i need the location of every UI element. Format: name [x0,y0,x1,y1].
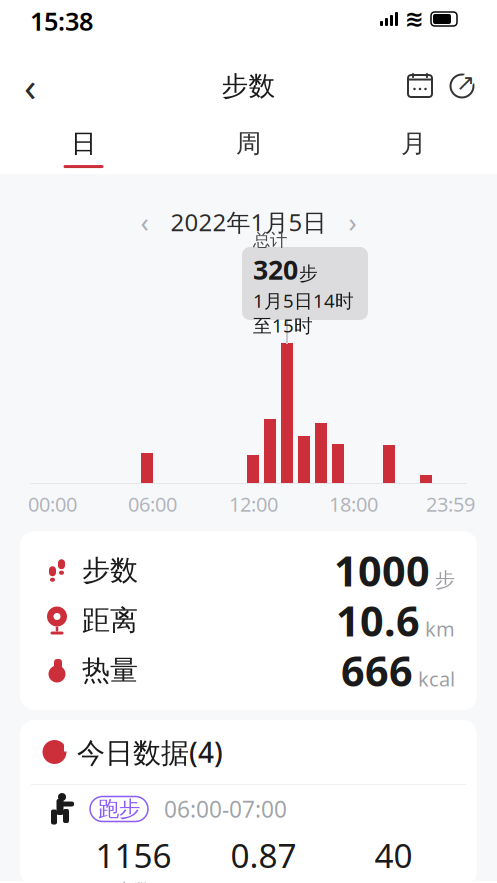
button[interactable]: 返回 [8,64,52,108]
button[interactable]: 后一天 [340,207,364,237]
staticText: ↗ [456,70,475,95]
button[interactable]: 分享 [440,64,484,108]
staticText: 10.6 [336,593,420,648]
staticText: ‹ [140,204,148,240]
staticText: 06:00-07:00 [164,794,287,824]
staticText: › [348,204,356,240]
button[interactable]: 周 [166,120,331,176]
staticText: 1156 [95,833,171,877]
staticText: 0.87 [230,833,296,877]
staticText: 1月5日14时至15时 [253,288,354,338]
staticText: 总计 [253,229,287,251]
button[interactable]: 前一天 [132,207,156,237]
staticText: 666 [341,643,413,698]
staticText: 距离 [82,603,138,638]
staticText: 12:00 [229,491,278,517]
staticText: 40 [374,833,412,877]
staticText: km [425,615,455,642]
staticText: 步 [435,568,455,592]
staticText: 月 [401,128,426,159]
staticText: 步数 [221,70,275,102]
staticText: 15:38 [30,4,93,38]
staticText: 周 [236,128,261,159]
button[interactable]: 跑步 [20,785,477,883]
staticText: kcal [418,665,455,692]
staticText: 步数 [114,879,152,883]
staticText: 00:00 [28,491,77,517]
staticText: 步数 [82,553,138,588]
staticText: 日 [71,128,96,159]
staticText: 320 [253,252,298,287]
staticText: 23:59 [426,491,475,517]
staticText: ‹ [24,59,36,112]
staticText: 2022年1月5日 [170,206,326,238]
staticText: 步 [299,262,318,285]
button[interactable]: 日历 [398,64,442,108]
staticText: ≋ [405,6,424,32]
staticText: 06:00 [128,491,177,517]
staticText: 今日数据(4) [77,733,223,771]
staticText: 1000 [334,543,430,598]
staticText: 18:00 [329,491,378,517]
button[interactable]: 月 [331,120,496,176]
staticText: 热量 [82,653,138,688]
staticText: 跑步 [98,796,140,822]
button[interactable]: 日 [1,120,166,176]
